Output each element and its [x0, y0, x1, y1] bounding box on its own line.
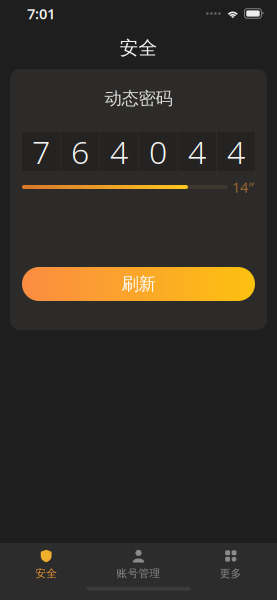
staticText: 0	[149, 130, 167, 173]
staticText: 账号管理	[116, 567, 160, 580]
staticText: 7	[32, 130, 50, 173]
staticText: 7:01	[27, 4, 55, 23]
staticText: 14″	[232, 177, 254, 197]
button[interactable]: 更多	[185, 543, 277, 581]
button[interactable]: 账号管理	[92, 543, 185, 581]
staticText: 安全	[35, 567, 57, 580]
staticText: 安全	[119, 36, 157, 59]
button[interactable]: 刷新	[22, 267, 255, 301]
staticText: 刷新	[121, 273, 155, 295]
button[interactable]: 安全	[0, 543, 92, 581]
staticText: 动态密码	[104, 88, 172, 109]
staticText: 4	[188, 130, 206, 173]
staticText: 6	[71, 130, 89, 173]
staticText: 更多	[220, 567, 242, 580]
staticText: 4	[227, 130, 245, 173]
staticText: 4	[110, 130, 128, 173]
